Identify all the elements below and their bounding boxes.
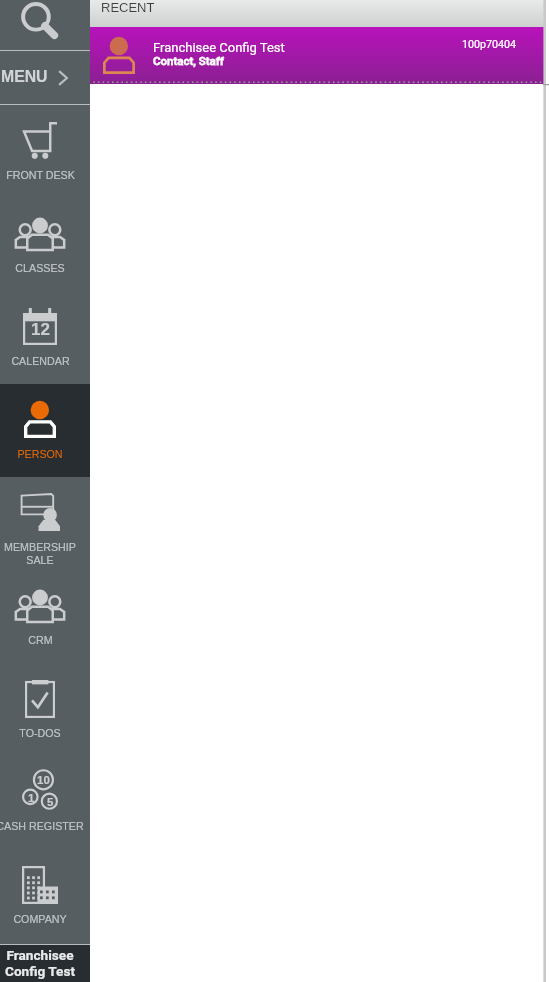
button[interactable]: CRM: [0, 570, 90, 663]
staticText: CALENDAR: [11, 355, 70, 367]
button[interactable]: 10: [0, 756, 90, 849]
staticText: PERSON: [17, 448, 63, 460]
staticText: CRM: [28, 634, 53, 646]
button[interactable]: 12: [0, 291, 90, 384]
button[interactable]: Franchisee Config Test: [90, 27, 544, 84]
staticText: 5: [47, 796, 54, 809]
staticText: Franchisee Config Test: [0, 947, 80, 980]
staticText: Franchisee Config Test: [153, 40, 285, 55]
button[interactable]: MEMBERSHIP SALE: [0, 477, 90, 570]
staticText: CASH REGISTER: [0, 820, 84, 832]
staticText: 100p70404: [462, 38, 517, 51]
staticText: TO-DOS: [19, 727, 61, 739]
button[interactable]: FRONT DESK: [0, 105, 90, 198]
staticText: 12: [31, 320, 50, 339]
staticText: FRONT DESK: [6, 169, 75, 181]
staticText: Contact, Staff: [153, 54, 224, 67]
staticText: MENU: [1, 68, 48, 86]
button[interactable]: MENU: [0, 51, 90, 104]
staticText: CLASSES: [15, 262, 65, 274]
staticText: COMPANY: [13, 913, 67, 925]
staticText: RECENT: [101, 0, 155, 15]
button[interactable]: Franchisee Config Test: [0, 945, 90, 982]
button[interactable]: COMPANY: [0, 849, 90, 942]
staticText: MEMBERSHIP SALE: [4, 541, 76, 566]
button[interactable]: PERSON: [0, 384, 90, 477]
staticText: 1: [28, 792, 35, 805]
button[interactable]: Search: [0, 0, 90, 50]
staticText: 10: [37, 774, 50, 787]
button[interactable]: TO-DOS: [0, 663, 90, 756]
button[interactable]: CLASSES: [0, 198, 90, 291]
